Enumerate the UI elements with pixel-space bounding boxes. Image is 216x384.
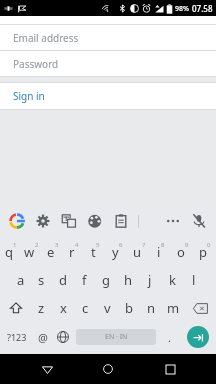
staticText: o xyxy=(177,243,185,261)
staticText: 5 xyxy=(96,241,100,249)
button[interactable]: m xyxy=(162,294,184,322)
button[interactable]: Recent apps xyxy=(155,354,185,384)
staticText: l xyxy=(192,271,196,289)
button[interactable]: Email address xyxy=(0,25,216,50)
staticText: u xyxy=(133,243,142,261)
button[interactable]: a xyxy=(10,266,31,294)
button[interactable]: Backspace xyxy=(184,294,216,322)
button[interactable]: v xyxy=(96,294,118,322)
staticText: c xyxy=(82,299,89,317)
staticText: i xyxy=(157,243,161,261)
button[interactable]: p xyxy=(194,238,216,266)
staticText: 98% xyxy=(175,4,189,14)
button[interactable]: b xyxy=(118,294,140,322)
staticText: g xyxy=(102,271,110,289)
button[interactable]: n xyxy=(140,294,162,322)
button[interactable]: EN · IN xyxy=(76,329,156,345)
staticText: w xyxy=(24,243,35,261)
staticText: j xyxy=(148,271,152,289)
button[interactable]: Back xyxy=(32,354,62,384)
staticText: 9 xyxy=(185,241,189,249)
button[interactable]: Voice input off xyxy=(186,208,212,234)
staticText: h xyxy=(124,271,133,289)
button[interactable]: Shift xyxy=(0,294,31,322)
button[interactable]: Sign in xyxy=(0,83,216,109)
staticText: n xyxy=(147,299,156,317)
staticText: s xyxy=(38,271,45,289)
button[interactable]: x xyxy=(52,294,74,322)
button[interactable]: Google search xyxy=(4,208,30,234)
staticText: 8 xyxy=(161,241,165,249)
button[interactable]: f xyxy=(73,266,95,294)
button[interactable]: g xyxy=(95,266,117,294)
button[interactable]: z xyxy=(31,294,52,322)
staticText: Sign in xyxy=(13,89,45,103)
button[interactable]: y xyxy=(106,238,128,266)
staticText: r xyxy=(69,243,75,261)
button[interactable]: Translate xyxy=(56,208,82,234)
staticText: a xyxy=(17,271,25,289)
button[interactable]: t xyxy=(84,238,106,266)
staticText: e xyxy=(47,243,55,261)
staticText: Password xyxy=(13,57,59,71)
button[interactable]: i xyxy=(150,238,172,266)
button[interactable]: d xyxy=(52,266,73,294)
button[interactable]: o xyxy=(172,238,194,266)
staticText: 6 xyxy=(119,241,123,249)
button[interactable]: e xyxy=(42,238,63,266)
staticText: EN · IN xyxy=(105,332,128,342)
button[interactable]: s xyxy=(31,266,52,294)
button[interactable]: Change language xyxy=(53,322,73,352)
button[interactable]: u xyxy=(128,238,150,266)
staticText: 1 xyxy=(13,241,17,249)
button[interactable]: r xyxy=(63,238,84,266)
staticText: ?123 xyxy=(7,331,27,343)
staticText: 2 xyxy=(35,241,39,249)
staticText: x xyxy=(60,299,67,317)
button[interactable]: More options xyxy=(160,208,186,234)
button[interactable]: Settings xyxy=(30,208,56,234)
button[interactable]: Enter xyxy=(187,326,209,348)
staticText: v xyxy=(104,299,111,317)
staticText: . xyxy=(168,330,171,345)
staticText: m xyxy=(167,299,180,317)
button[interactable]: ?123 xyxy=(0,322,33,352)
staticText: q xyxy=(5,243,13,261)
staticText: 7 xyxy=(142,241,146,249)
staticText: t xyxy=(91,243,96,261)
staticText: 4 xyxy=(75,241,79,249)
staticText: d xyxy=(59,271,67,289)
staticText: Email address xyxy=(13,31,79,45)
staticText: @ xyxy=(38,330,48,345)
button[interactable]: Password xyxy=(0,51,216,76)
button[interactable]: q xyxy=(0,238,21,266)
button[interactable]: . xyxy=(159,322,179,352)
staticText: b xyxy=(125,299,133,317)
button[interactable]: l xyxy=(183,266,205,294)
button[interactable]: k xyxy=(161,266,183,294)
staticText: k xyxy=(169,271,176,289)
button[interactable]: j xyxy=(139,266,161,294)
staticText: y xyxy=(112,243,119,261)
button[interactable]: Home xyxy=(93,354,123,384)
staticText: f xyxy=(82,271,87,289)
button[interactable]: Themes xyxy=(82,208,108,234)
button[interactable]: h xyxy=(117,266,139,294)
staticText: p xyxy=(199,243,207,261)
staticText: 3 xyxy=(55,241,59,249)
button[interactable]: w xyxy=(21,238,42,266)
staticText: 07.58 xyxy=(192,3,213,14)
button[interactable]: Clipboard xyxy=(108,208,134,234)
button[interactable]: @ xyxy=(33,322,53,352)
staticText: 0 xyxy=(207,241,211,249)
button[interactable]: c xyxy=(74,294,96,322)
staticText: z xyxy=(38,299,45,317)
